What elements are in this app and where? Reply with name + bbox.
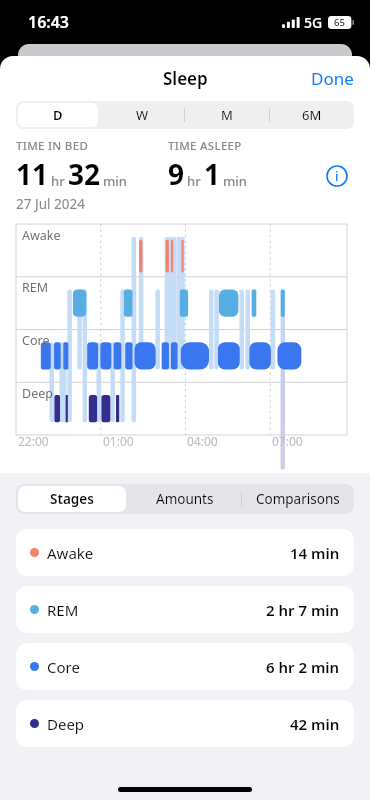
staticText: 16:43: [28, 11, 70, 33]
staticText: 5G: [304, 13, 323, 32]
button[interactable]: Information: [320, 159, 354, 193]
staticText: hr: [51, 172, 65, 190]
staticText: TIME IN BED: [16, 138, 89, 154]
button[interactable]: Amounts: [128, 484, 241, 514]
button[interactable]: W: [100, 101, 184, 129]
button[interactable]: Stages: [16, 484, 128, 514]
staticText: Sleep: [163, 67, 208, 90]
staticText: Awake: [47, 543, 94, 563]
button[interactable]: D: [16, 101, 100, 129]
staticText: Amounts: [156, 490, 214, 508]
staticText: Core: [22, 332, 50, 349]
staticText: Comparisons: [256, 490, 340, 508]
staticText: 14 min: [290, 543, 340, 563]
button[interactable]: REM: [16, 586, 354, 633]
staticText: 1: [204, 155, 221, 193]
staticText: TIME ASLEEP: [168, 138, 242, 154]
staticText: Core: [47, 657, 80, 677]
staticText: 22:00: [18, 433, 49, 449]
staticText: 07:00: [272, 433, 303, 449]
staticText: 6 hr 2 min: [266, 657, 340, 677]
staticText: min: [103, 172, 127, 190]
button[interactable]: Done: [295, 61, 370, 96]
staticText: M: [221, 106, 233, 124]
button[interactable]: M: [184, 101, 269, 129]
button[interactable]: Comparisons: [241, 484, 354, 514]
staticText: 01:00: [103, 433, 134, 449]
staticText: W: [136, 106, 149, 124]
staticText: 9: [168, 155, 185, 193]
staticText: Deep: [47, 714, 85, 734]
staticText: 42 min: [290, 714, 340, 734]
button[interactable]: Awake: [16, 529, 354, 576]
staticText: Awake: [22, 227, 61, 244]
staticText: REM: [22, 279, 49, 296]
staticText: 27 Jul 2024: [16, 195, 85, 213]
button[interactable]: Core: [16, 643, 354, 690]
staticText: i: [335, 167, 339, 185]
staticText: 6M: [302, 106, 322, 124]
staticText: hr: [187, 172, 201, 190]
staticText: 2 hr 7 min: [266, 600, 340, 620]
button[interactable]: 6M: [269, 101, 354, 129]
staticText: 04:00: [187, 433, 218, 449]
staticText: 65: [328, 16, 351, 29]
staticText: 11: [16, 155, 49, 193]
staticText: D: [53, 106, 63, 124]
staticText: 32: [68, 155, 101, 193]
staticText: REM: [47, 600, 79, 620]
button[interactable]: Deep: [16, 700, 354, 747]
staticText: min: [223, 172, 247, 190]
staticText: Deep: [22, 385, 53, 402]
staticText: Done: [311, 67, 354, 90]
staticText: Stages: [50, 490, 94, 508]
